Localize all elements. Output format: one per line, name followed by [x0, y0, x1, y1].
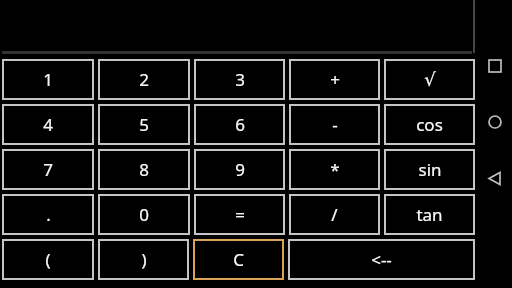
button[interactable]: Back — [477, 160, 512, 196]
staticText: cos — [416, 113, 443, 136]
staticText: - — [332, 113, 338, 136]
button[interactable]: Home — [477, 104, 512, 140]
staticText: = — [235, 203, 245, 226]
button[interactable]: 8 — [98, 149, 190, 190]
button[interactable]: 7 — [2, 149, 94, 190]
button[interactable]: sin — [384, 149, 475, 190]
button[interactable]: + — [289, 59, 380, 100]
staticText: 4 — [43, 113, 53, 136]
staticText: . — [46, 203, 51, 226]
button[interactable]: √ — [384, 59, 475, 100]
button[interactable]: 3 — [194, 59, 285, 100]
staticText: / — [331, 203, 338, 226]
staticText: 9 — [235, 158, 245, 181]
staticText: tan — [416, 203, 443, 226]
staticText: sin — [418, 158, 442, 181]
button[interactable]: <-- — [288, 239, 475, 280]
button[interactable]: 9 — [194, 149, 285, 190]
staticText: <-- — [371, 248, 392, 271]
staticText: + — [330, 68, 340, 91]
button[interactable]: 1 — [2, 59, 94, 100]
staticText: 3 — [235, 68, 245, 91]
button[interactable]: 0 — [98, 194, 190, 235]
staticText: √ — [424, 69, 436, 90]
staticText: 8 — [139, 158, 149, 181]
button[interactable]: * — [289, 149, 380, 190]
staticText: 7 — [43, 158, 53, 181]
staticText: ( — [45, 248, 51, 271]
button[interactable]: Recent apps — [477, 48, 512, 84]
button[interactable]: ) — [98, 239, 189, 280]
staticText: 2 — [139, 68, 149, 91]
staticText: 6 — [235, 113, 245, 136]
staticText: 5 — [139, 113, 149, 136]
staticText: * — [330, 158, 340, 181]
staticText: 0 — [139, 203, 149, 226]
button[interactable]: tan — [384, 194, 475, 235]
button[interactable]: - — [289, 104, 380, 145]
staticText: 1 — [43, 68, 53, 91]
button[interactable]: 5 — [98, 104, 190, 145]
button[interactable]: Expression input — [0, 0, 477, 57]
button[interactable]: C — [193, 239, 284, 280]
button[interactable]: 6 — [194, 104, 285, 145]
button[interactable]: = — [194, 194, 285, 235]
staticText: C — [233, 248, 244, 271]
button[interactable]: 2 — [98, 59, 190, 100]
button[interactable]: . — [2, 194, 94, 235]
button[interactable]: 4 — [2, 104, 94, 145]
staticText: ) — [141, 248, 147, 271]
button[interactable]: / — [289, 194, 380, 235]
button[interactable]: cos — [384, 104, 475, 145]
button[interactable]: ( — [2, 239, 94, 280]
